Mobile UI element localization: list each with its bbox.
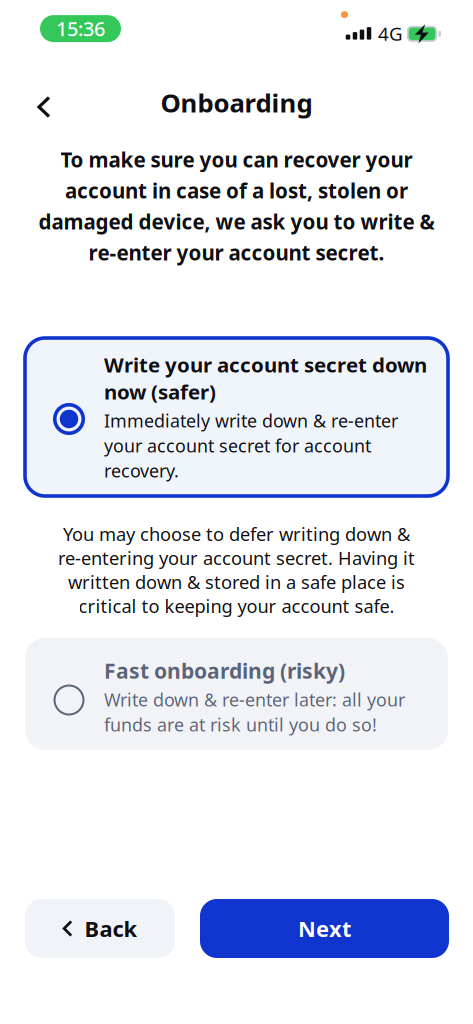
- staticText: Next: [298, 914, 351, 943]
- button[interactable]: Next: [200, 899, 449, 958]
- staticText: re-entering your account secret. Having …: [58, 546, 415, 570]
- staticText: funds are at risk until you do so!: [104, 712, 377, 737]
- staticText: Back: [84, 914, 137, 943]
- staticText: now (safer): [104, 378, 216, 405]
- button[interactable]: Write your account secret down: [25, 338, 448, 496]
- staticText: Write down & re-enter later: all your: [104, 687, 405, 712]
- staticText: To make sure you can recover your: [60, 145, 412, 173]
- staticText: Immediately write down & re-enter: [104, 408, 398, 433]
- staticText: Write your account secret down: [104, 351, 427, 378]
- staticText: 4G: [378, 21, 403, 46]
- button[interactable]: Back: [24, 84, 64, 129]
- staticText: recovery.: [104, 458, 179, 483]
- staticText: Onboarding: [160, 85, 312, 120]
- staticText: account in case of a lost, stolen or: [65, 176, 408, 204]
- button[interactable]: Fast onboarding (risky): [25, 638, 448, 750]
- staticText: re-enter your account secret.: [88, 238, 384, 266]
- staticText: damaged device, we ask you to write &: [38, 207, 434, 235]
- staticText: You may choose to defer writing down &: [63, 522, 410, 546]
- staticText: critical to keeping your account safe.: [78, 594, 394, 618]
- button[interactable]: Back: [25, 899, 175, 958]
- staticText: Fast onboarding (risky): [104, 656, 345, 685]
- staticText: 15:36: [56, 15, 105, 42]
- staticText: your account secret for account: [104, 433, 371, 458]
- staticText: written down & stored in a safe place is: [68, 570, 405, 594]
